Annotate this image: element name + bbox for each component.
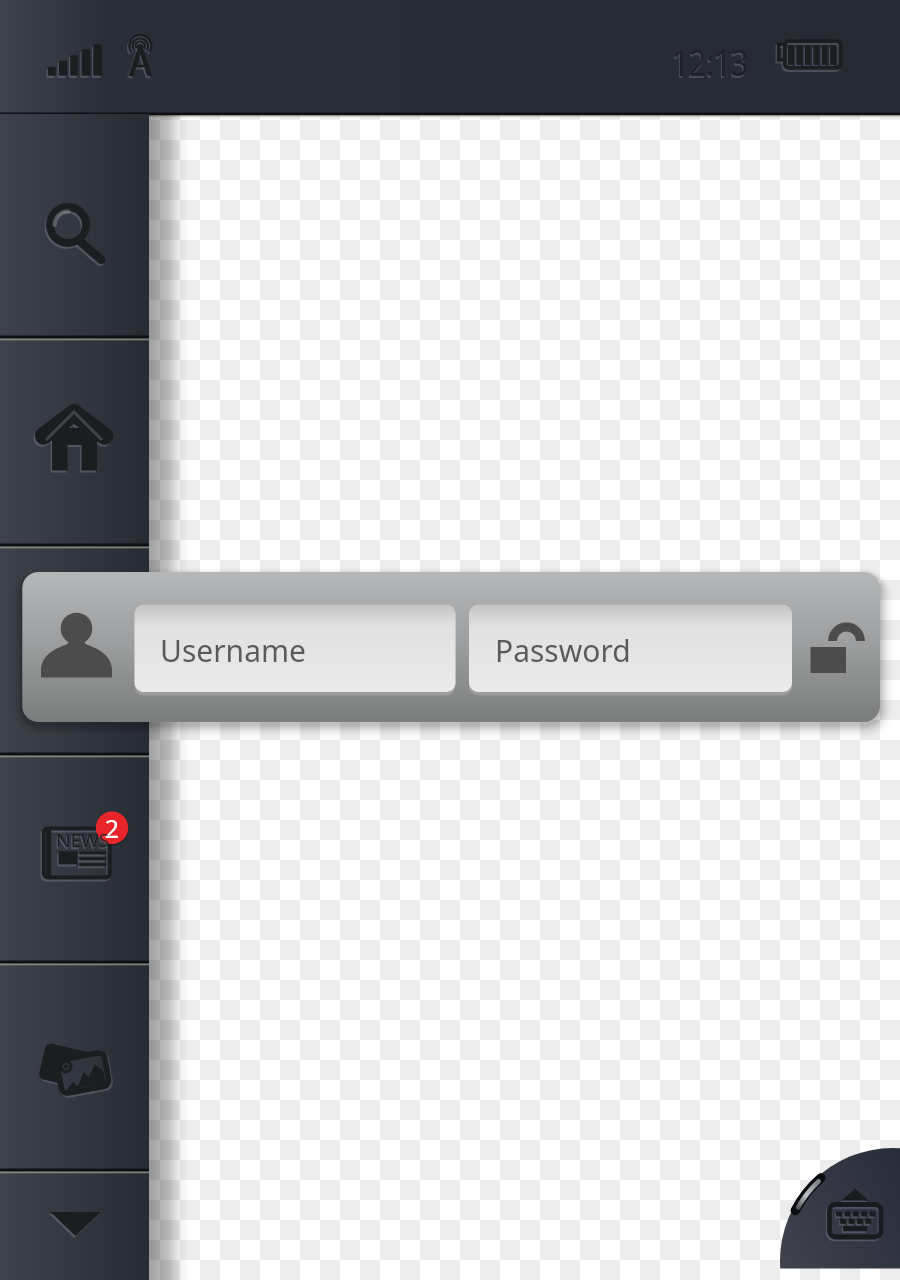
staticText: NEWS [56,828,110,853]
button[interactable]: Home [0,337,149,545]
button[interactable]: Gallery [0,962,149,1170]
staticText: 2 [97,811,127,845]
staticText: 12:13 [672,38,749,87]
staticText: Password [495,630,631,671]
button[interactable]: Show keyboard [780,1148,900,1268]
staticText: NEWS [55,830,109,855]
button[interactable] [469,604,792,692]
staticText: Username [160,630,306,671]
button[interactable] [134,604,456,692]
button[interactable]: News, 2 unread [0,754,149,962]
button[interactable]: Search [0,117,149,337]
button[interactable]: More [0,1170,149,1280]
button[interactable]: Profile [0,545,149,754]
button[interactable]: Unlock [802,622,862,682]
staticText: 12:13 [671,40,748,89]
